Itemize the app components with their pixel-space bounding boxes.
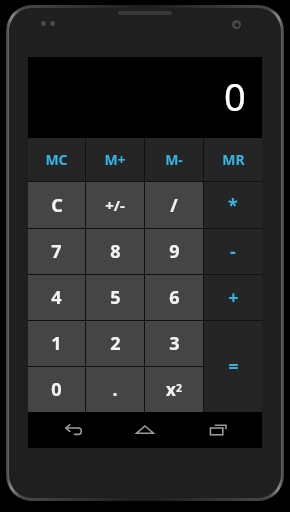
button[interactable]: 0	[28, 367, 85, 412]
button[interactable]: 3	[145, 321, 203, 366]
button[interactable]: MR	[204, 138, 262, 181]
button[interactable]: Recent apps	[190, 413, 246, 447]
staticText: 3	[169, 331, 180, 356]
button[interactable]: 1	[28, 321, 85, 366]
staticText: 7	[51, 239, 62, 264]
button[interactable]: =	[204, 321, 262, 412]
button[interactable]: 4	[28, 275, 85, 320]
button[interactable]: .	[86, 367, 144, 412]
button[interactable]: 2	[86, 321, 144, 366]
button[interactable]: x	[145, 367, 203, 412]
button[interactable]: *	[204, 182, 262, 228]
staticText: M-	[165, 150, 183, 169]
button[interactable]: Home	[117, 413, 173, 447]
staticText: 9	[169, 239, 180, 264]
staticText: 0	[51, 377, 62, 402]
staticText: 0	[224, 70, 246, 122]
button[interactable]: +	[204, 275, 262, 320]
button[interactable]: Back	[45, 413, 101, 447]
button[interactable]: -	[204, 229, 262, 274]
staticText: M+	[104, 150, 126, 169]
button[interactable]: 5	[86, 275, 144, 320]
staticText: 2	[176, 381, 183, 395]
staticText: +/-	[105, 195, 125, 215]
button[interactable]: M-	[145, 138, 203, 181]
staticText: 2	[110, 331, 121, 356]
staticText: *	[228, 193, 238, 218]
staticText: C	[51, 193, 63, 218]
button[interactable]: 7	[28, 229, 85, 274]
button[interactable]: C	[28, 182, 85, 228]
staticText: MR	[222, 150, 245, 169]
staticText: x	[166, 378, 176, 401]
staticText: +	[228, 285, 239, 310]
staticText: 8	[110, 239, 121, 264]
button[interactable]: M+	[86, 138, 144, 181]
staticText: 4	[51, 285, 62, 310]
staticText: =	[228, 354, 239, 379]
staticText: .	[112, 377, 118, 402]
staticText: 1	[51, 331, 62, 356]
button[interactable]: 9	[145, 229, 203, 274]
staticText: -	[230, 239, 236, 264]
button[interactable]: +/-	[86, 182, 144, 228]
button[interactable]: /	[145, 182, 203, 228]
staticText: MC	[45, 150, 68, 169]
staticText: 6	[169, 285, 180, 310]
button[interactable]: 6	[145, 275, 203, 320]
button[interactable]: MC	[28, 138, 85, 181]
button[interactable]: 8	[86, 229, 144, 274]
staticText: /	[170, 193, 178, 218]
staticText: 5	[110, 285, 121, 310]
